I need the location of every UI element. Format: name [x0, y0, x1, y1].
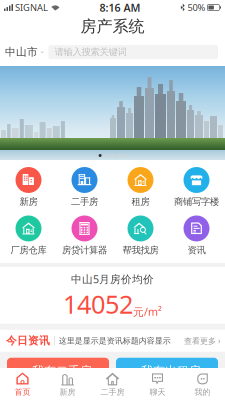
button[interactable]: 中山市 [0, 38, 48, 66]
staticText: 聊天 [149, 387, 165, 397]
staticText: 新房 [19, 196, 37, 207]
button[interactable]: 聊天 [135, 369, 180, 399]
staticText: SIGNAL [15, 1, 48, 14]
staticText: 二手房 [100, 387, 124, 397]
button[interactable]: 请输入搜索关键词 [48, 45, 218, 59]
button[interactable]: 我有二手房 [7, 358, 109, 394]
button[interactable]: 房贷计算器 [56, 215, 112, 256]
button[interactable]: 我有出租房 [116, 358, 218, 394]
staticText: 中山5月房价均价 [71, 272, 154, 286]
button[interactable]: 帮我找房 [112, 215, 168, 256]
staticText: 请输入搜索关键词 [54, 46, 126, 58]
button[interactable]: 新房 [0, 167, 56, 207]
button[interactable]: 厂房仓库 [0, 215, 56, 256]
staticText: 房贷计算器 [62, 244, 107, 256]
button[interactable]: 二手房 [90, 369, 135, 399]
staticText: 查看更多 › [184, 335, 220, 346]
staticText: 中山市 [5, 45, 38, 58]
staticText: 我的 [194, 387, 210, 397]
button[interactable]: 首页 [0, 369, 45, 399]
button[interactable]: 资讯 [168, 215, 224, 256]
staticText: 商铺写字楼 [174, 196, 219, 207]
staticText: 14052 [63, 287, 133, 321]
button[interactable]: 租房 [112, 167, 168, 207]
button[interactable]: 我的 [180, 369, 225, 399]
staticText: 厂房仓库 [10, 244, 46, 256]
staticText: 帮我找房 [122, 244, 158, 256]
staticText: 我有二手房 [32, 364, 92, 378]
staticText: 元/m² [133, 305, 162, 319]
staticText: 资讯 [187, 244, 205, 256]
staticText: 首页 [14, 387, 30, 397]
staticText: 新房 [59, 387, 75, 397]
staticText: 50% [187, 1, 205, 14]
button[interactable]: 新房 [45, 369, 90, 399]
staticText: 这里是显示是资讯标题内容显示 [59, 336, 171, 346]
staticText: 8:16 AM [99, 0, 140, 15]
button[interactable]: 二手房 [56, 167, 112, 207]
staticText: 今日资讯 [6, 334, 50, 347]
button[interactable]: 商铺写字楼 [168, 167, 224, 207]
staticText: 我有出租房 [141, 364, 201, 378]
button[interactable]: 今日资讯 [0, 330, 225, 352]
staticText: 二手房 [71, 196, 98, 207]
staticText: 租房 [131, 196, 149, 207]
staticText: 房产系统 [80, 17, 144, 36]
